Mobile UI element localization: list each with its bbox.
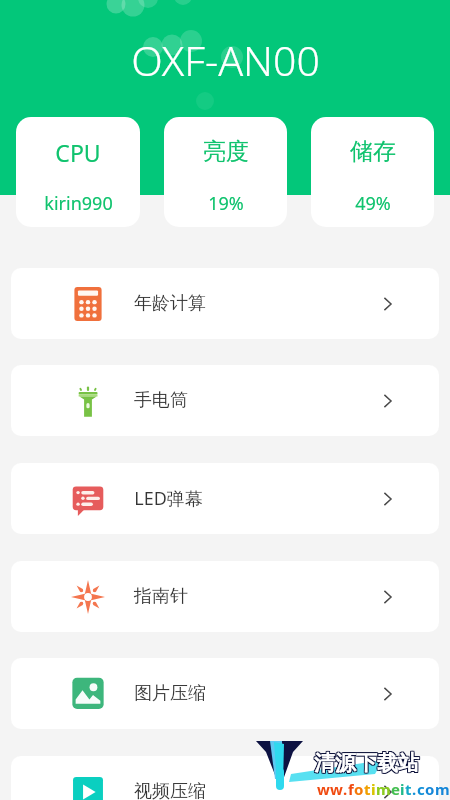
staticText: 清源下载站 [314,750,419,776]
other: Open [379,392,397,410]
other: Open [379,685,397,703]
staticText: i [371,779,376,797]
button[interactable]: LED弹幕 [11,463,439,534]
staticText: 指南针 [134,585,188,608]
button[interactable]: CPU [16,117,140,227]
staticText: LED弹幕 [134,486,203,511]
other: Open [379,588,397,606]
staticText: i [400,779,405,797]
staticText: w [317,779,330,797]
staticText: 清源下载站 [314,751,419,777]
button[interactable]: 指南针 [11,561,439,632]
staticText: 清源下载站 [313,749,418,775]
staticText: o [425,779,435,797]
staticText: . [343,779,348,797]
staticText: 清源下载站 [315,751,420,777]
staticText: OXF-AN00 [131,32,320,88]
button[interactable]: 亮度 [164,117,287,227]
staticText: c [417,779,425,797]
staticText: t [405,779,412,797]
other: Open [379,783,397,800]
staticText: 清源下载站 [315,750,420,776]
staticText: 清源下载站 [313,750,418,776]
staticText: 清源下载站 [313,751,418,777]
staticText: kirin990 [44,191,113,216]
button[interactable]: 手电筒 [11,365,439,436]
staticText: 清源下载站 [315,749,420,775]
staticText: 视频压缩 [134,780,206,800]
button[interactable]: 图片压缩 [11,658,439,729]
staticText: CPU [55,137,101,168]
staticText: 年龄计算 [134,292,206,315]
staticText: 图片压缩 [134,682,206,705]
button[interactable]: 年龄计算 [11,268,439,339]
staticText: . [412,779,417,797]
staticText: 49% [355,191,391,216]
staticText: 19% [208,191,244,216]
staticText: t [364,779,371,797]
button[interactable]: 视频压缩 [11,756,439,800]
staticText: e [391,779,400,797]
button[interactable]: 储存 [311,117,434,227]
staticText: 储存 [350,137,396,166]
other: Open [379,295,397,313]
staticText: 亮度 [203,137,249,166]
other: Open [379,490,397,508]
staticText: 清源下载站 [314,749,419,775]
staticText: w [330,779,343,797]
staticText: f [348,779,354,797]
staticText: m [376,779,391,797]
staticText: m [435,779,450,797]
staticText: o [354,779,364,797]
staticText: 手电筒 [134,389,188,412]
